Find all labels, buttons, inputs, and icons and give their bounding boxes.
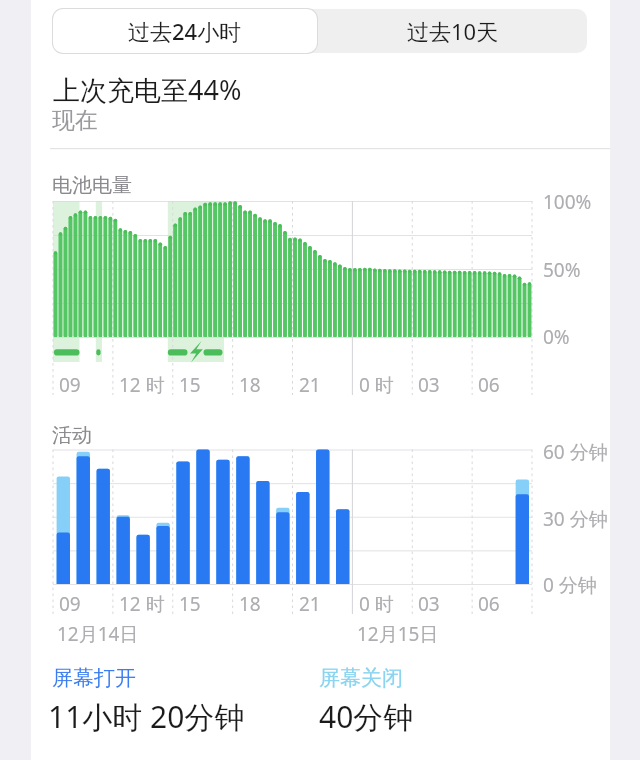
staticText: 03 [418, 372, 440, 398]
staticText: 上次充电至44% [53, 71, 242, 108]
staticText: 18 [239, 591, 261, 617]
staticText: 06 [478, 591, 500, 617]
staticText: 0 时 [359, 591, 394, 617]
staticText: 过去24小时 [128, 16, 242, 46]
staticText: 11小时 20分钟 [48, 696, 245, 737]
staticText: 过去10天 [407, 16, 499, 46]
staticText: 50% [543, 257, 581, 283]
staticText: 0 分钟 [543, 572, 597, 598]
staticText: 30 分钟 [543, 506, 608, 532]
staticText: 09 [59, 372, 81, 398]
staticText: 21 [299, 372, 321, 398]
staticText: 03 [418, 591, 440, 617]
button[interactable]: 屏幕打开 [52, 665, 136, 691]
staticText: 40分钟 [319, 696, 414, 737]
staticText: 12月15日 [357, 621, 439, 647]
staticText: 电池电量 [52, 173, 132, 198]
staticText: 100% [543, 189, 592, 215]
staticText: 12 时 [119, 372, 165, 398]
staticText: 12月14日 [57, 621, 139, 647]
button[interactable]: 屏幕关闭 [319, 665, 403, 691]
staticText: 屏幕关闭 [319, 665, 403, 691]
staticText: 屏幕打开 [52, 665, 136, 691]
staticText: 15 [179, 591, 201, 617]
staticText: 现在 [52, 106, 98, 135]
staticText: 60 分钟 [543, 439, 608, 465]
staticText: 12 时 [119, 591, 165, 617]
staticText: 15 [179, 372, 201, 398]
staticText: 活动 [52, 423, 92, 448]
staticText: 09 [59, 591, 81, 617]
button[interactable]: 过去24小时 [53, 9, 317, 53]
staticText: 06 [478, 372, 500, 398]
staticText: 0% [543, 324, 570, 350]
staticText: 0 时 [359, 372, 394, 398]
staticText: 21 [299, 591, 321, 617]
staticText: 18 [239, 372, 261, 398]
button[interactable]: 过去10天 [319, 9, 587, 53]
